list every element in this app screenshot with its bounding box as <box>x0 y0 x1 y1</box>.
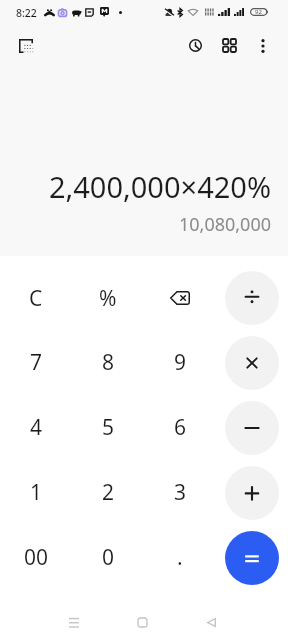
button[interactable]: More options <box>249 32 276 59</box>
button[interactable]: 6 <box>144 395 216 460</box>
button[interactable]: 1 <box>0 460 72 525</box>
staticText: 3 <box>174 478 187 507</box>
button[interactable]: Apps <box>216 32 243 59</box>
staticText: 00 <box>24 543 49 572</box>
button[interactable]: 8 <box>72 330 144 395</box>
button[interactable]: Backspace <box>144 266 216 330</box>
button[interactable]: Equals <box>225 531 279 585</box>
button[interactable]: Back <box>191 602 231 640</box>
button[interactable]: Minus <box>216 395 288 460</box>
staticText: % <box>99 284 117 313</box>
button[interactable]: 7 <box>0 330 72 395</box>
staticText: 8:22 <box>16 6 37 20</box>
button[interactable]: Divide <box>225 271 279 325</box>
button[interactable]: Divide <box>216 266 288 330</box>
button[interactable]: C <box>0 266 72 330</box>
button[interactable]: 5 <box>72 395 144 460</box>
button[interactable]: 2 <box>72 460 144 525</box>
button[interactable]: Unit converter <box>12 32 40 60</box>
other: Backspace <box>170 291 190 305</box>
button[interactable]: Multiply <box>225 336 279 390</box>
staticText: 8 <box>102 348 115 377</box>
staticText: 0 <box>102 543 115 572</box>
button[interactable]: Multiply <box>216 330 288 395</box>
button[interactable]: 4 <box>0 395 72 460</box>
button[interactable]: 00 <box>0 525 72 590</box>
staticText: 2 <box>102 478 115 507</box>
staticText: 9 <box>174 348 187 377</box>
staticText: 2,400,000×420% <box>48 167 271 206</box>
button[interactable]: 0 <box>72 525 144 590</box>
button[interactable]: Home <box>122 602 162 640</box>
button[interactable]: Recent apps <box>54 602 94 640</box>
button[interactable]: Plus <box>225 466 279 520</box>
staticText: 10,080,000 <box>178 212 271 237</box>
button[interactable]: . <box>144 525 216 590</box>
button[interactable]: Plus <box>216 460 288 525</box>
button[interactable]: Equals <box>216 525 288 590</box>
button[interactable]: History <box>182 32 209 59</box>
staticText: . <box>177 543 183 572</box>
button[interactable]: % <box>72 266 144 330</box>
button[interactable]: Minus <box>225 401 279 455</box>
staticText: C <box>29 284 43 313</box>
staticText: 7 <box>30 348 43 377</box>
staticText: 4 <box>30 413 43 442</box>
staticText: 1 <box>30 478 43 507</box>
button[interactable]: 3 <box>144 460 216 525</box>
staticText: 6 <box>174 413 187 442</box>
staticText: 92 <box>255 8 262 16</box>
staticText: 5 <box>102 413 115 442</box>
button[interactable]: 9 <box>144 330 216 395</box>
